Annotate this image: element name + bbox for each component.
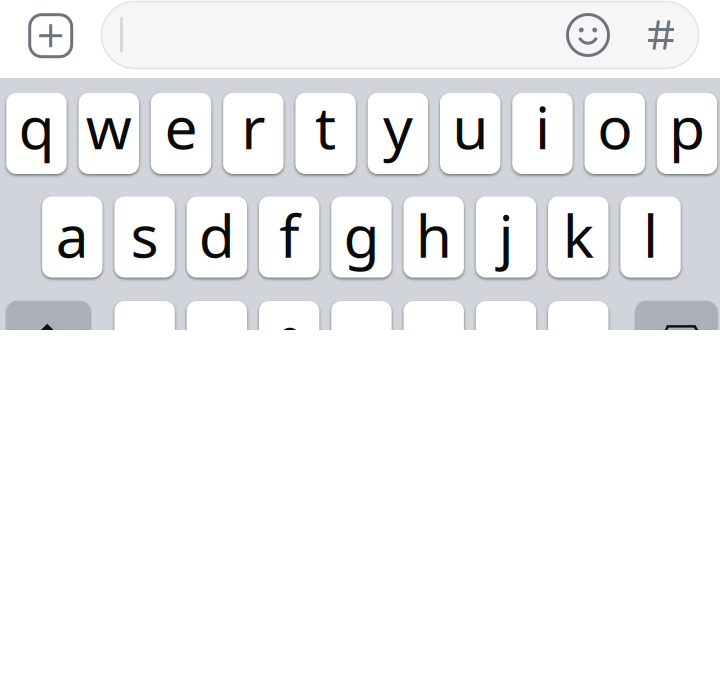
button[interactable]: m	[548, 301, 608, 382]
staticText: o	[597, 87, 632, 165]
staticText: t	[315, 87, 336, 165]
staticText: r	[241, 87, 265, 165]
staticText: q	[18, 87, 54, 165]
button[interactable]: Delete	[636, 301, 717, 382]
staticText: l	[643, 196, 658, 274]
staticText: e	[165, 87, 198, 165]
staticText: k	[563, 196, 594, 274]
button[interactable]: Shift	[7, 301, 90, 382]
button[interactable]: k	[548, 196, 608, 278]
staticText: s	[131, 196, 159, 274]
button[interactable]: p	[657, 93, 717, 174]
staticText: u	[452, 87, 488, 165]
staticText: p	[669, 87, 705, 165]
button[interactable]: Stickers	[647, 19, 674, 51]
staticText: w	[86, 87, 132, 165]
button[interactable]: r	[223, 93, 283, 174]
button[interactable]: o	[584, 93, 645, 174]
button[interactable]: h	[403, 196, 464, 278]
button[interactable]: v	[331, 301, 392, 382]
staticText: y	[383, 87, 413, 165]
button[interactable]: Add attachment	[30, 15, 72, 57]
button[interactable]: n	[476, 301, 536, 382]
button[interactable]: e	[151, 93, 211, 174]
button[interactable]: d	[187, 196, 247, 278]
button[interactable]: u	[440, 93, 500, 174]
staticText: j	[498, 196, 513, 274]
staticText: i	[535, 87, 550, 165]
button[interactable]: Emoji	[567, 14, 608, 55]
button[interactable]: g	[331, 196, 392, 278]
staticText: d	[199, 196, 235, 274]
button[interactable]: j	[476, 196, 536, 278]
button[interactable]: q	[6, 93, 67, 174]
button[interactable]: z	[114, 301, 175, 382]
button[interactable]: i	[512, 93, 573, 174]
button[interactable]: b	[403, 301, 464, 382]
button[interactable]: f	[259, 196, 319, 278]
staticText: h	[416, 196, 452, 274]
staticText: a	[56, 196, 89, 274]
button[interactable]: a	[42, 196, 102, 278]
staticText: g	[343, 196, 379, 274]
button[interactable]: x	[187, 301, 247, 382]
button[interactable]: c	[259, 301, 319, 382]
button[interactable]: s	[114, 196, 175, 278]
button[interactable]: w	[79, 93, 139, 174]
button[interactable]: l	[620, 196, 681, 278]
staticText: f	[279, 196, 299, 274]
button[interactable]: t	[295, 93, 356, 174]
button[interactable]: y	[368, 93, 428, 174]
